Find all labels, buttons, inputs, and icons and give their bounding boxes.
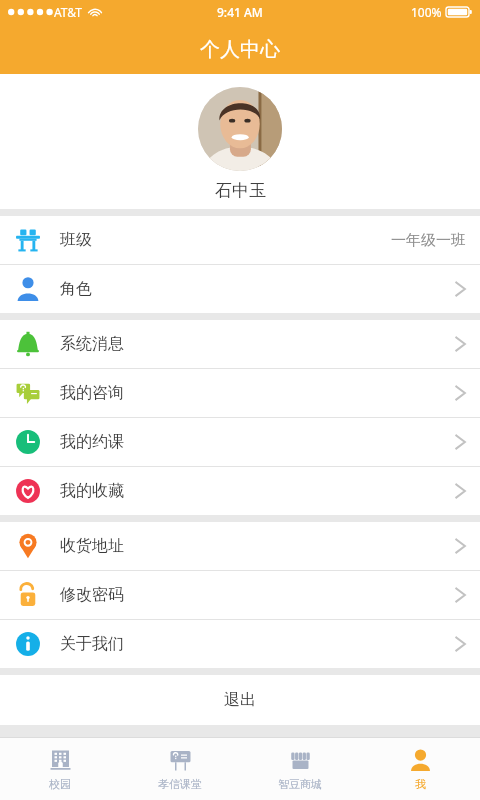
staticText: 校园 [49, 777, 71, 791]
button[interactable]: 校园 [0, 738, 120, 800]
staticText: 修改密码 [60, 585, 124, 605]
button[interactable]: 我的收藏 [0, 467, 480, 515]
staticText: 9:41 AM [217, 4, 263, 20]
staticText: 100% [411, 4, 442, 20]
staticText: 个人中心 [200, 37, 280, 62]
button[interactable]: 退出 [0, 675, 480, 725]
staticText: 退出 [224, 690, 256, 710]
staticText: 班级 [60, 230, 92, 250]
button[interactable]: 角色 [0, 265, 480, 313]
button[interactable]: 班级 [0, 216, 480, 264]
staticText: AT&T [54, 4, 82, 20]
staticText: 收货地址 [60, 536, 124, 556]
staticText: 关于我们 [60, 634, 124, 654]
staticText: 我的约课 [60, 432, 124, 452]
button[interactable]: 系统消息 [0, 320, 480, 368]
staticText: 一年级一班 [391, 231, 466, 250]
button[interactable] [198, 87, 282, 171]
staticText: 我 [415, 777, 426, 791]
button[interactable]: 修改密码 [0, 571, 480, 619]
staticText: 我的收藏 [60, 481, 124, 501]
button[interactable]: 收货地址 [0, 522, 480, 570]
staticText: 角色 [60, 279, 92, 299]
button[interactable]: 关于我们 [0, 620, 480, 668]
staticText: 系统消息 [60, 334, 124, 354]
staticText: 我的咨询 [60, 383, 124, 403]
button[interactable]: 孝信课堂 [120, 738, 240, 800]
button[interactable]: 我 [360, 738, 480, 800]
staticText: 孝信课堂 [158, 777, 202, 791]
staticText: 石中玉 [215, 180, 266, 201]
button[interactable]: 我的约课 [0, 418, 480, 466]
staticText: 智豆商城 [278, 777, 322, 791]
button[interactable]: 我的咨询 [0, 369, 480, 417]
button[interactable]: 智豆商城 [240, 738, 360, 800]
